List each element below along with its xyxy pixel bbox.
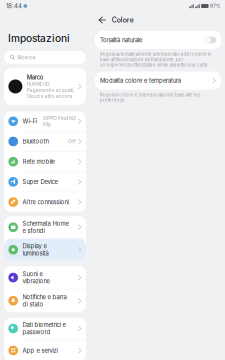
staticText: Marco [27, 74, 44, 81]
button[interactable]: Back [88, 13, 112, 26]
staticText: Suoni e vibrazione [23, 270, 50, 285]
button[interactable]: Wi-Fi [4, 111, 86, 131]
button[interactable]: Bluetooth [4, 132, 86, 151]
staticText: OPPO Find N2 Flip [43, 115, 76, 127]
button[interactable]: Display e luminosità [4, 239, 86, 261]
button[interactable]: Super Device [4, 172, 86, 192]
staticText: Super Device [23, 178, 58, 185]
staticText: App e servizi [23, 347, 58, 354]
button[interactable]: Dati biometrici e password [4, 318, 86, 339]
staticText: Modalità colore e temperatura [100, 77, 181, 84]
staticText: 97% [210, 3, 221, 9]
button[interactable]: App e servizi [4, 340, 86, 360]
button[interactable]: Schermata Home e sfondi [4, 216, 86, 238]
button[interactable]: Modalità colore e temperatura [95, 72, 221, 90]
staticText: Bluetooth [23, 138, 49, 145]
staticText: Schermata Home e sfondi [23, 220, 69, 234]
staticText: 18:44 [6, 2, 22, 10]
staticText: HUAWEI ID, [27, 81, 50, 87]
staticText: Dati biometrici e password [23, 321, 66, 336]
staticText: Colore [112, 16, 134, 24]
button[interactable]: Notifiche e barra di stato [4, 289, 86, 312]
staticText: Off [68, 138, 76, 144]
staticText: Rete mobile [23, 158, 55, 165]
button[interactable]: Suoni e vibrazione [4, 266, 86, 289]
staticText: Display e luminosità [23, 243, 49, 257]
staticText: Notifiche e barra di stato [23, 294, 67, 308]
button[interactable]: Altre connessioni [4, 192, 86, 212]
staticText: Impostazioni [8, 32, 70, 44]
staticText: Altre connessioni [23, 198, 69, 206]
staticText: Cloud e altro ancora [27, 94, 73, 99]
staticText: Regola automaticamente la temperatura de… [100, 52, 212, 68]
staticText: Pagamenti e acquisti, [27, 88, 74, 93]
staticText: Ricerca [18, 54, 36, 60]
button[interactable]: Marco [4, 68, 86, 105]
button[interactable]: Tonalità naturale [95, 31, 221, 49]
staticText: Wi-Fi [23, 118, 37, 125]
staticText: Regola il colore e la temperatura in bas… [100, 92, 201, 103]
button[interactable]: Rete mobile [4, 152, 86, 171]
staticText: Tonalità naturale [100, 36, 142, 44]
